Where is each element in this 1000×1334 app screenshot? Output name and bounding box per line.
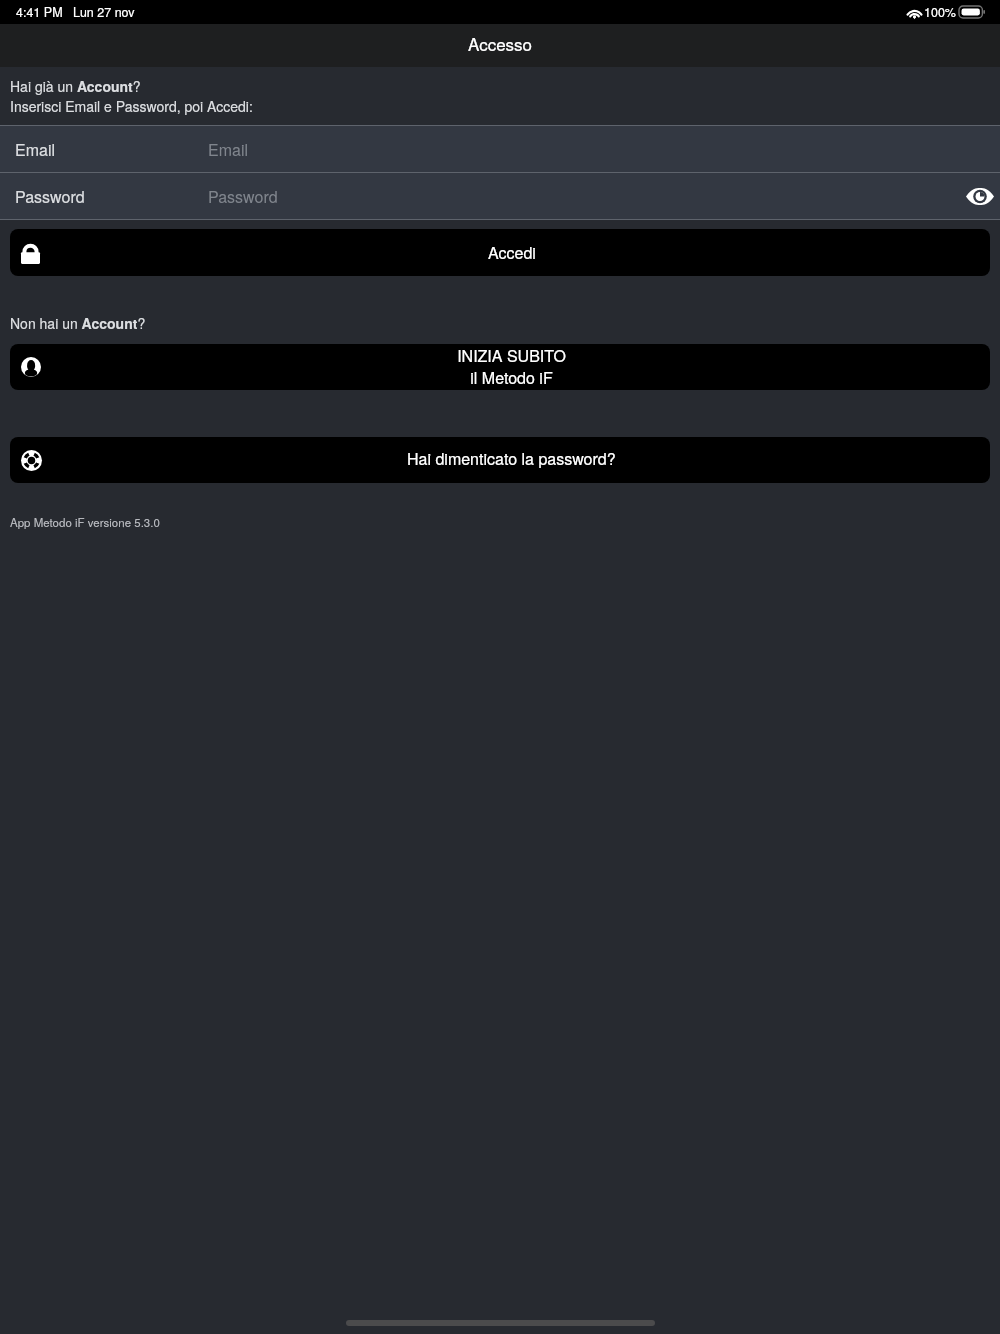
button[interactable]: Password [0, 173, 1000, 219]
staticText: Lun 27 nov [73, 3, 135, 21]
staticText: 4:41 PM [16, 3, 63, 21]
staticText: INIZIA SUBITO il Metodo iF [457, 344, 566, 387]
staticText: Accesso [468, 31, 533, 55]
staticText: App Metodo iF versione 5.3.0 [10, 514, 160, 530]
staticText: Password [15, 185, 85, 208]
staticText: Email [208, 138, 249, 161]
staticText: Hai già un Account? Inserisci Email e Pa… [10, 76, 253, 116]
staticText: 100% [924, 3, 956, 21]
button[interactable]: Mostra password [962, 178, 998, 214]
staticText: Non hai un Account? [10, 313, 146, 333]
button[interactable]: Hai dimenticato la password? [10, 437, 990, 483]
staticText: Accedi [488, 241, 536, 264]
staticText: Email [15, 138, 56, 161]
button[interactable]: INIZIA SUBITO il Metodo iF [10, 344, 990, 390]
button[interactable]: Accedi [10, 229, 990, 276]
button[interactable]: Email [0, 126, 1000, 172]
staticText: Hai dimenticato la password? [407, 447, 616, 470]
staticText: Password [208, 185, 278, 208]
